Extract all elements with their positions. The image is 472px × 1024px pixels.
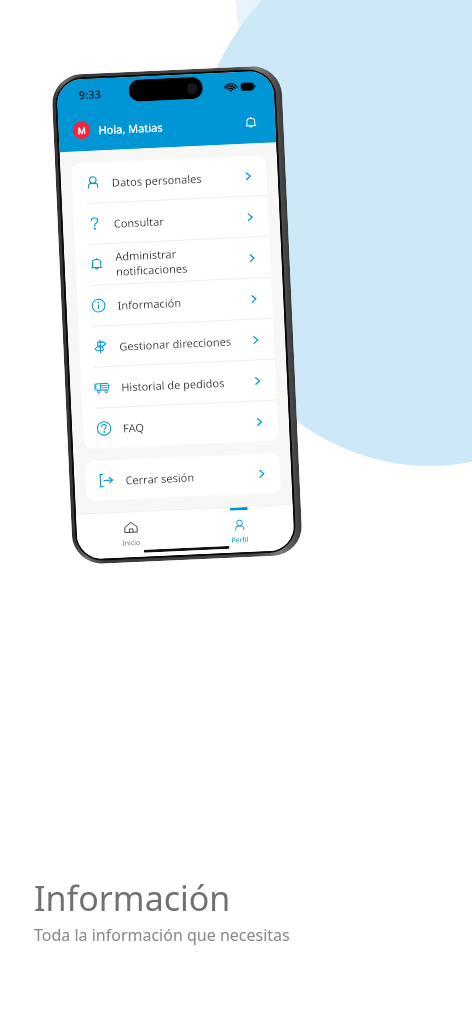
staticText: Gestionar direcciones	[119, 333, 250, 354]
button[interactable]: Información	[77, 278, 273, 327]
button[interactable]: Notificaciones	[239, 111, 262, 134]
staticText: Perfil	[231, 535, 249, 546]
staticText: 9:33	[79, 86, 101, 102]
staticText: Cerrar sesión	[125, 467, 257, 487]
button[interactable]: M	[72, 121, 91, 139]
staticText: Información	[34, 875, 231, 921]
staticText: Hola, Matias	[98, 119, 164, 137]
staticText: Administrar notificaciones	[115, 243, 247, 279]
staticText: Historial de pedidos	[121, 374, 252, 395]
staticText: Información	[117, 292, 249, 313]
button[interactable]: Datos personales	[71, 155, 268, 205]
staticText: Inicio	[122, 538, 140, 549]
button[interactable]: FAQ	[82, 401, 279, 449]
button[interactable]: Cerrar sesión	[84, 452, 281, 501]
staticText: Consultar	[113, 210, 245, 231]
staticText: M	[77, 124, 87, 136]
button[interactable]: Administrar notificaciones	[75, 237, 271, 286]
staticText: Toda la información que necesitas	[34, 924, 290, 946]
button[interactable]: Consultar	[73, 196, 270, 246]
button[interactable]: Perfil	[184, 504, 295, 555]
staticText: Datos personales	[112, 169, 243, 190]
button[interactable]: Inicio	[76, 509, 186, 560]
staticText: FAQ	[123, 415, 254, 435]
button[interactable]: Historial de pedidos	[80, 360, 277, 409]
button[interactable]: Gestionar direcciones	[78, 319, 275, 368]
